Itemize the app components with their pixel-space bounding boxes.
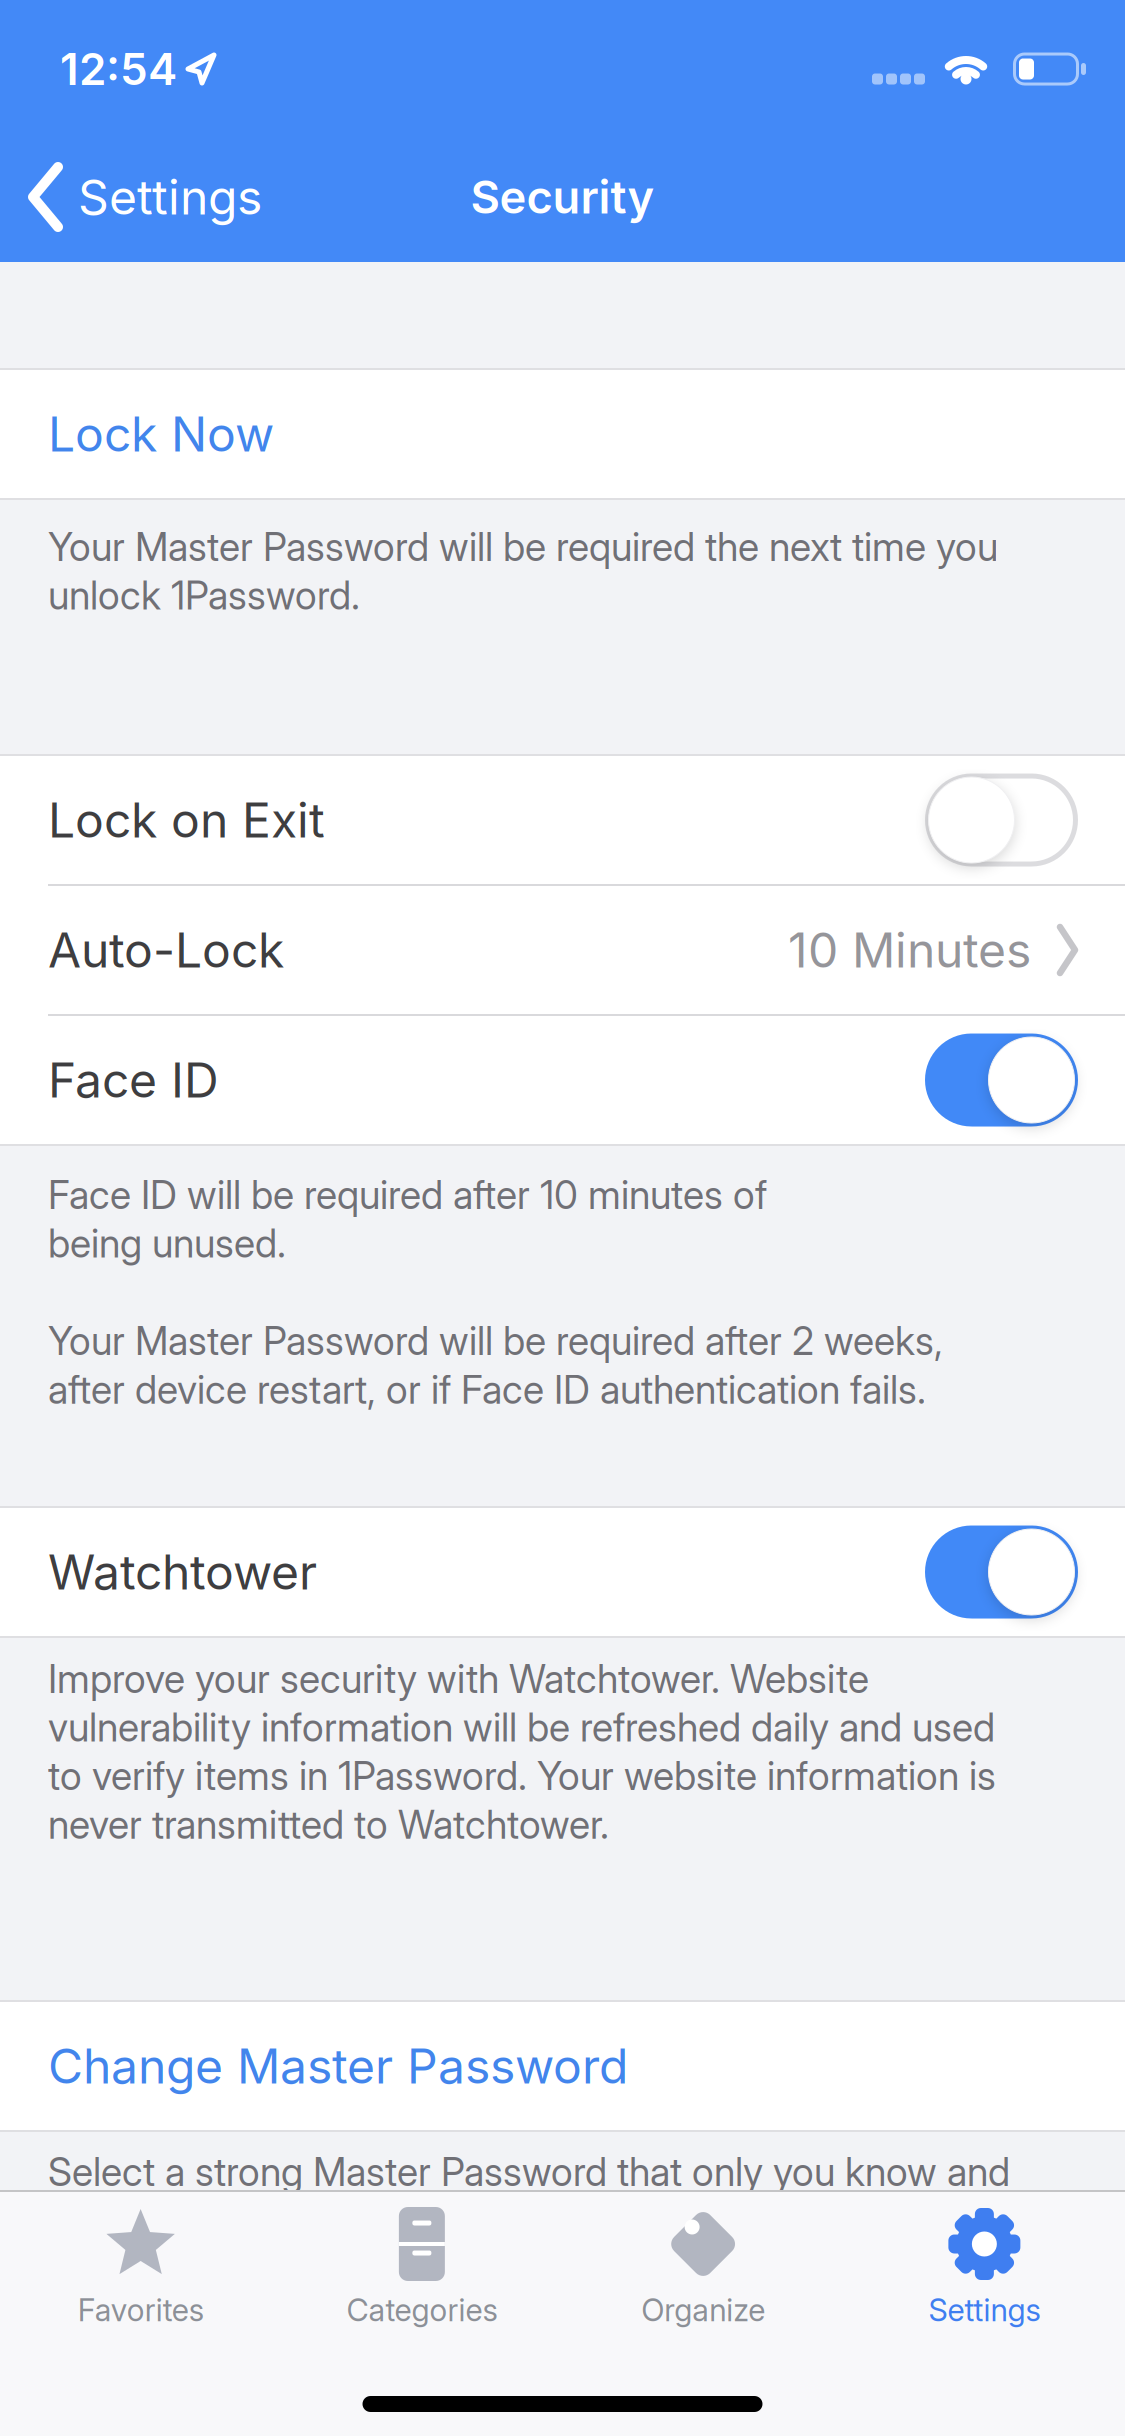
staticText: Categories [346,2292,497,2328]
button[interactable]: Lock Now [0,370,1125,498]
staticText: Security [470,170,654,224]
button[interactable]: Categories [281,2206,562,2328]
staticText: Favorites [78,2292,204,2328]
staticText: Change Master Password [48,2038,628,2094]
staticText: Settings [928,2292,1040,2328]
staticText: 12:54 [60,43,177,95]
staticText: Organize [641,2292,765,2328]
staticText: Face ID [48,1052,219,1108]
button[interactable]: Face ID [925,1033,1078,1126]
staticText: Settings [78,169,262,225]
button[interactable]: Auto-Lock [0,886,1125,1014]
button[interactable]: Watchtower [925,1525,1078,1618]
staticText: Face ID will be required after 10 minute… [48,1172,767,1266]
button[interactable]: Change Master Password [0,2002,1125,2130]
staticText: Improve your security with Watchtower. W… [48,1656,996,1847]
button[interactable]: Settings [844,2206,1125,2328]
staticText: Your Master Password will be required af… [48,1318,943,1412]
button[interactable]: Favorites [0,2206,281,2328]
staticText: Lock Now [48,406,274,462]
button[interactable]: Organize [562,2206,844,2328]
staticText: 10 Minutes [788,922,1031,978]
button[interactable]: Lock on Exit [925,773,1078,866]
staticText: Select a strong Master Password that onl… [48,2149,1010,2195]
button[interactable]: Back [28,164,262,230]
staticText: Your Master Password will be required th… [48,524,998,618]
staticText: Lock on Exit [48,792,325,848]
staticText: Watchtower [48,1544,317,1600]
staticText: Auto-Lock [48,922,284,978]
